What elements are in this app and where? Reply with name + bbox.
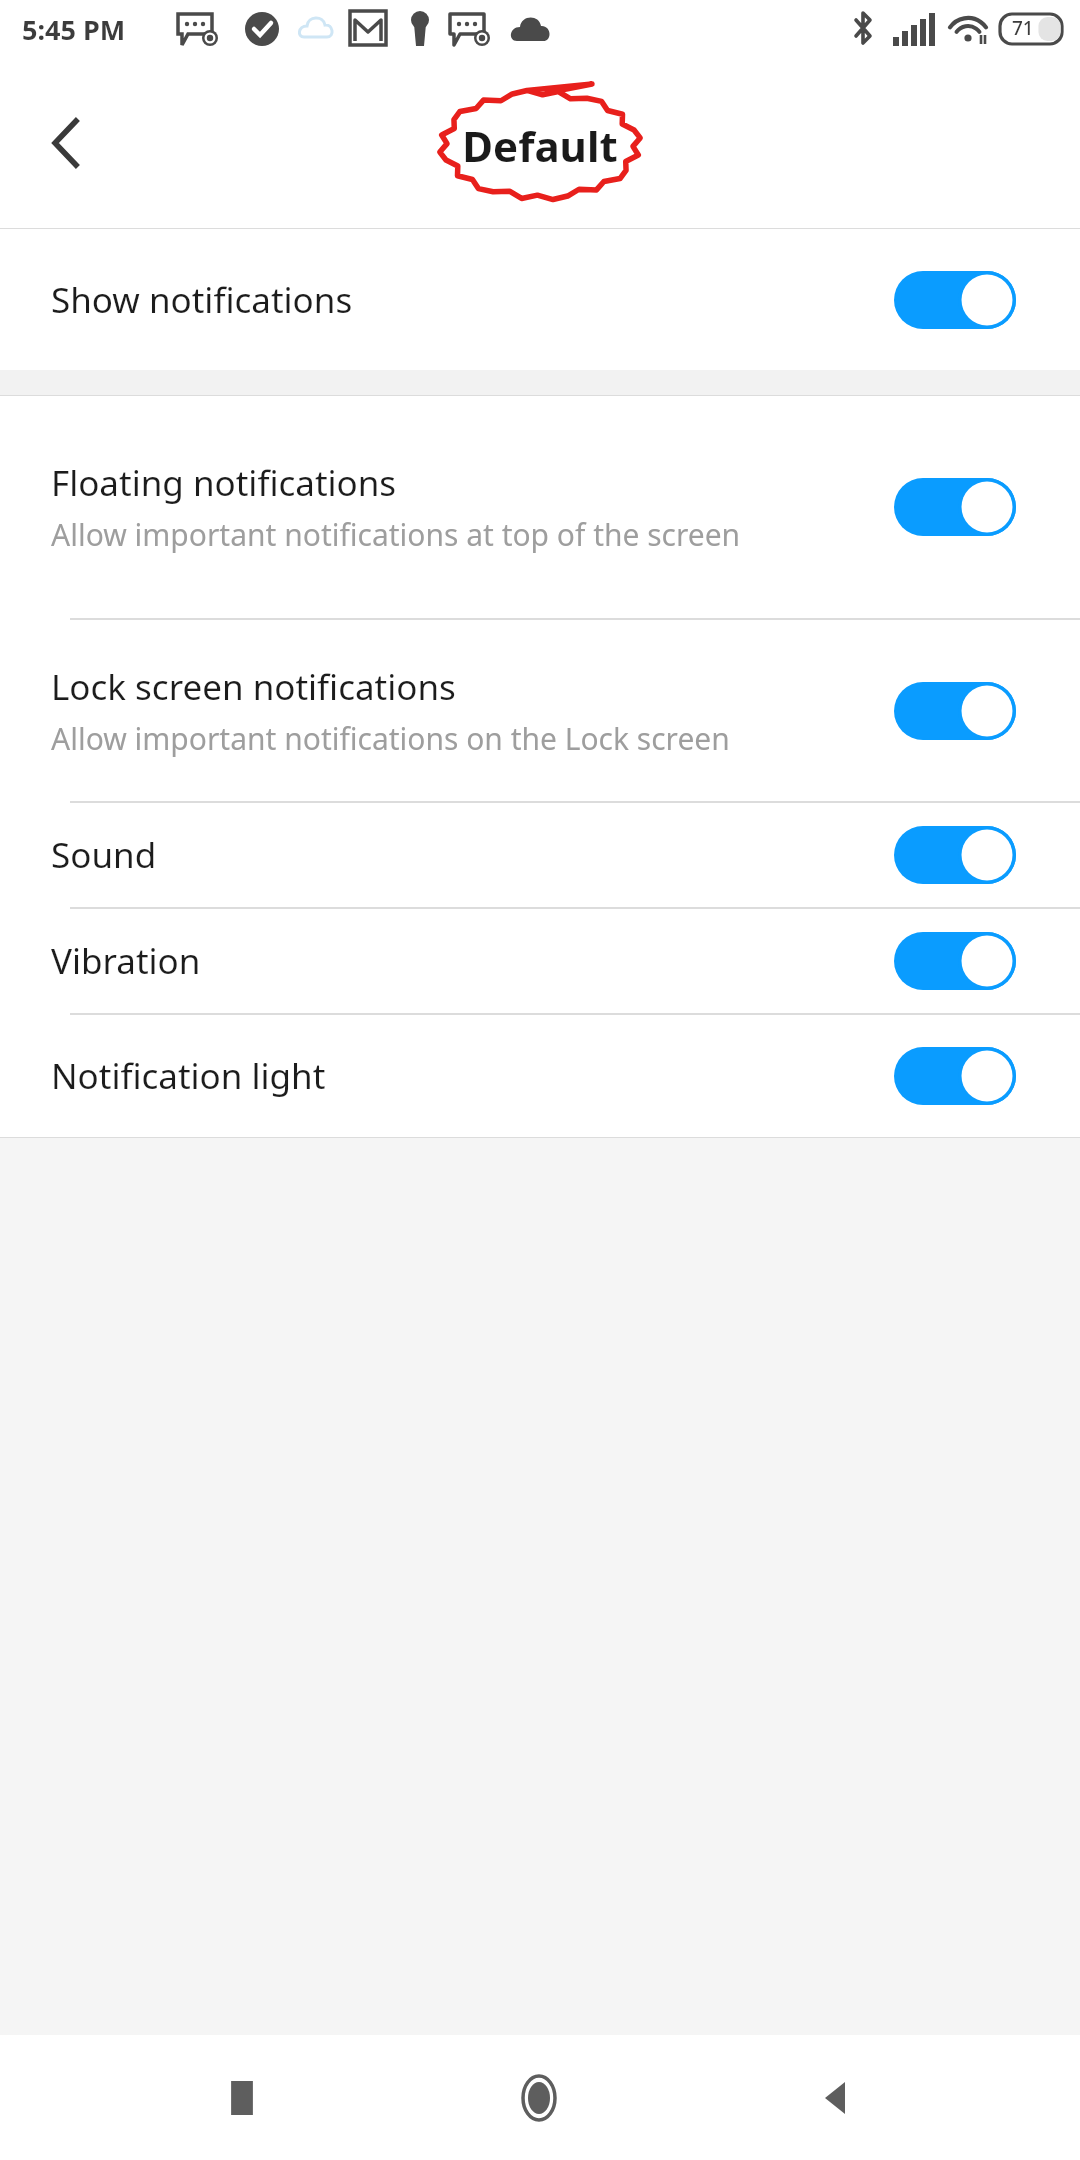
- staticText: Sound: [51, 831, 157, 879]
- staticText: Floating notifications: [51, 459, 397, 507]
- staticText: 5:45 PM: [22, 11, 126, 48]
- button[interactable]: Toggle on: [894, 478, 1016, 536]
- staticText: Vibration: [51, 937, 201, 985]
- button[interactable]: Toggle on: [894, 1047, 1016, 1105]
- button[interactable]: Toggle on: [894, 932, 1016, 990]
- button[interactable]: Toggle on: [894, 682, 1016, 740]
- staticText: 71: [1012, 15, 1034, 41]
- button[interactable]: Vibration: [0, 909, 1080, 1013]
- staticText: Allow important notifications on the Loc…: [51, 718, 730, 759]
- staticText: Notification light: [51, 1052, 326, 1100]
- button[interactable]: Show notifications: [0, 229, 1080, 370]
- button[interactable]: Lock screen notifications: [0, 620, 1080, 801]
- button[interactable]: Home: [484, 2043, 594, 2153]
- button[interactable]: Back: [782, 2043, 892, 2153]
- button[interactable]: Recent apps: [187, 2043, 297, 2153]
- staticText: Show notifications: [51, 276, 353, 324]
- button[interactable]: Notification light: [0, 1015, 1080, 1137]
- staticText: Lock screen notifications: [51, 663, 456, 711]
- staticText: Allow important notifications at top of …: [51, 514, 741, 555]
- button[interactable]: Toggle on: [894, 271, 1016, 329]
- button[interactable]: Floating notifications: [0, 396, 1080, 618]
- button[interactable]: Back: [20, 97, 112, 189]
- staticText: Default: [462, 117, 618, 174]
- button[interactable]: Toggle on: [894, 826, 1016, 884]
- button[interactable]: Sound: [0, 803, 1080, 907]
